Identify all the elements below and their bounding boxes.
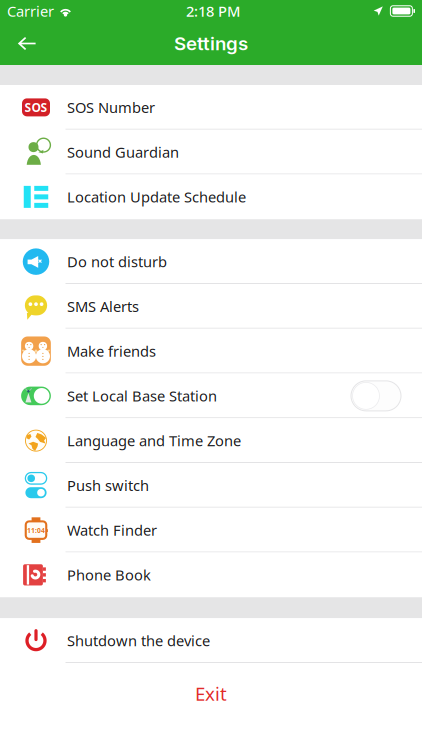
staticText: Phone Book xyxy=(67,565,151,585)
button[interactable]: Do not disturb xyxy=(0,239,422,284)
staticText: Set Local Base Station xyxy=(67,386,217,406)
button[interactable]: Back xyxy=(0,22,54,65)
staticText: Carrier xyxy=(7,1,54,21)
button[interactable]: Set Local Base Station xyxy=(0,373,422,418)
button[interactable]: Push switch xyxy=(0,463,422,508)
staticText: 2:18 PM xyxy=(186,1,240,21)
button[interactable]: Phone Book xyxy=(0,552,422,597)
staticText: Language and Time Zone xyxy=(67,431,241,450)
staticText: Exit xyxy=(195,681,227,706)
staticText: Location Update Schedule xyxy=(67,187,246,207)
button[interactable]: 11:04 xyxy=(0,508,422,553)
staticText: Make friends xyxy=(67,341,156,361)
staticText: Settings xyxy=(174,32,248,55)
button[interactable]: Shutdown the device xyxy=(0,618,422,663)
staticText: Sound Guardian xyxy=(67,142,179,162)
staticText: SOS xyxy=(24,99,47,115)
staticText: Do not disturb xyxy=(67,252,167,271)
button[interactable]: Language and Time Zone xyxy=(0,418,422,463)
staticText: Shutdown the device xyxy=(67,631,210,650)
staticText: SOS Number xyxy=(67,98,155,117)
staticText: 11:04 xyxy=(27,526,45,535)
staticText: SMS Alerts xyxy=(67,297,139,316)
button[interactable]: Sound Guardian xyxy=(0,130,422,175)
staticText: Watch Finder xyxy=(67,520,157,540)
button[interactable]: Location Update Schedule xyxy=(0,174,422,219)
button[interactable]: Make friends xyxy=(0,329,422,374)
staticText: Push switch xyxy=(67,476,149,495)
button[interactable]: SMS Alerts xyxy=(0,284,422,329)
button[interactable]: SOS xyxy=(0,85,422,130)
button[interactable]: Exit xyxy=(0,663,422,724)
